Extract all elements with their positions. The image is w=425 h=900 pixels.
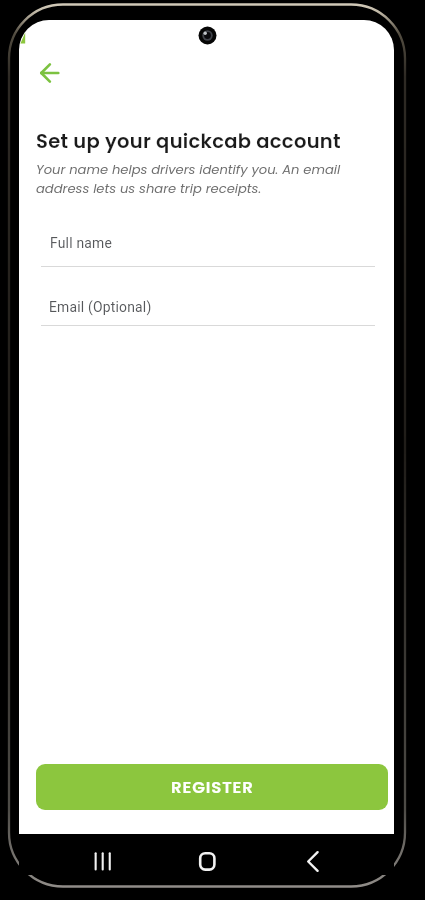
button[interactable] [33,57,66,89]
staticText: Email (Optional) [49,299,152,315]
staticText: Your name helps drivers identify you. An… [36,160,341,197]
staticText: Set up your quickcab account [36,128,341,155]
button[interactable]: Full name [41,230,375,267]
button[interactable]: Email (Optional) [41,290,375,326]
button[interactable]: REGISTER [36,764,388,810]
button[interactable] [190,844,225,878]
staticText: Full name [50,235,112,251]
button[interactable] [296,844,330,878]
button[interactable] [84,844,121,878]
staticText: REGISTER [171,776,254,799]
